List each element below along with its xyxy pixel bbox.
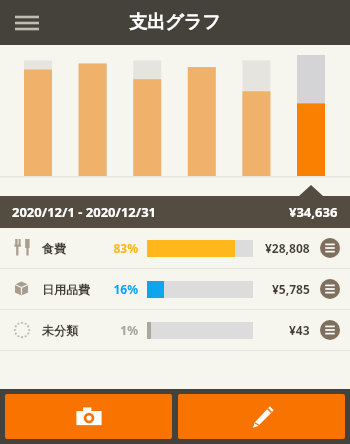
- button[interactable]: Take photo of receipt: [5, 394, 172, 439]
- staticText: 1%: [104, 322, 138, 338]
- button[interactable]: 日用品費: [0, 269, 350, 309]
- staticText: ¥43: [289, 322, 310, 338]
- button[interactable]: Menu: [6, 2, 48, 44]
- button[interactable]: More options for 日用品費: [318, 277, 342, 301]
- staticText: 2020/12/1 - 2020/12/31: [12, 203, 157, 221]
- staticText: 83%: [104, 240, 138, 256]
- staticText: 支出グラフ: [129, 11, 221, 34]
- staticText: 日用品費: [42, 282, 104, 297]
- button[interactable]: 未分類: [0, 310, 350, 350]
- staticText: ¥28,808: [265, 240, 310, 256]
- staticText: 食費: [42, 241, 104, 256]
- staticText: 16%: [104, 281, 138, 297]
- staticText: ¥5,785: [272, 281, 310, 297]
- button[interactable]: More options for 食費: [318, 236, 342, 260]
- button[interactable]: Add entry manually: [178, 394, 345, 439]
- button[interactable]: More options for 未分類: [318, 318, 342, 342]
- staticText: ¥34,636: [289, 203, 338, 221]
- staticText: 未分類: [42, 323, 104, 338]
- button[interactable]: 食費: [0, 228, 350, 268]
